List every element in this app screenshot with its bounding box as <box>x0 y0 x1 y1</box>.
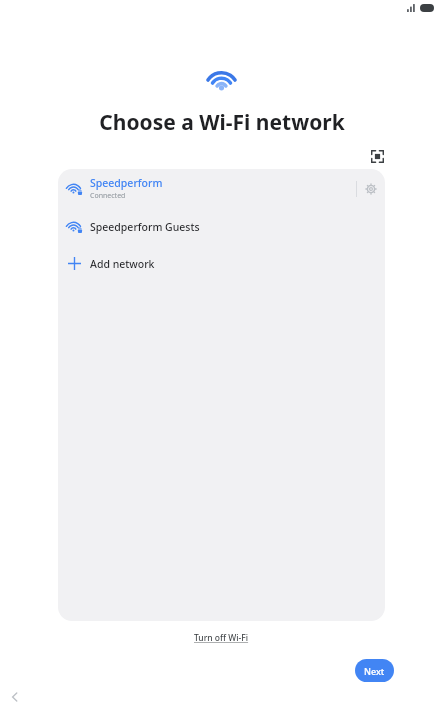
button[interactable]: Turn off Wi-Fi <box>188 630 255 646</box>
button[interactable]: Next <box>355 659 394 682</box>
button[interactable]: Add network <box>58 246 385 281</box>
button[interactable]: Network settings <box>357 169 385 208</box>
staticText: Add network <box>90 257 155 271</box>
staticText: Next <box>364 665 385 677</box>
staticText: Speedperform Guests <box>90 220 200 234</box>
staticText: Connected <box>90 191 126 201</box>
staticText: Speedperform <box>90 176 163 190</box>
staticText: Choose a Wi-Fi network <box>99 108 345 137</box>
button[interactable]: Speedperform <box>58 169 385 208</box>
staticText: Turn off Wi-Fi <box>194 632 249 644</box>
button[interactable]: Back <box>6 688 24 706</box>
button[interactable]: Speedperform Guests <box>58 208 385 246</box>
button[interactable]: Scan QR code <box>366 145 388 167</box>
